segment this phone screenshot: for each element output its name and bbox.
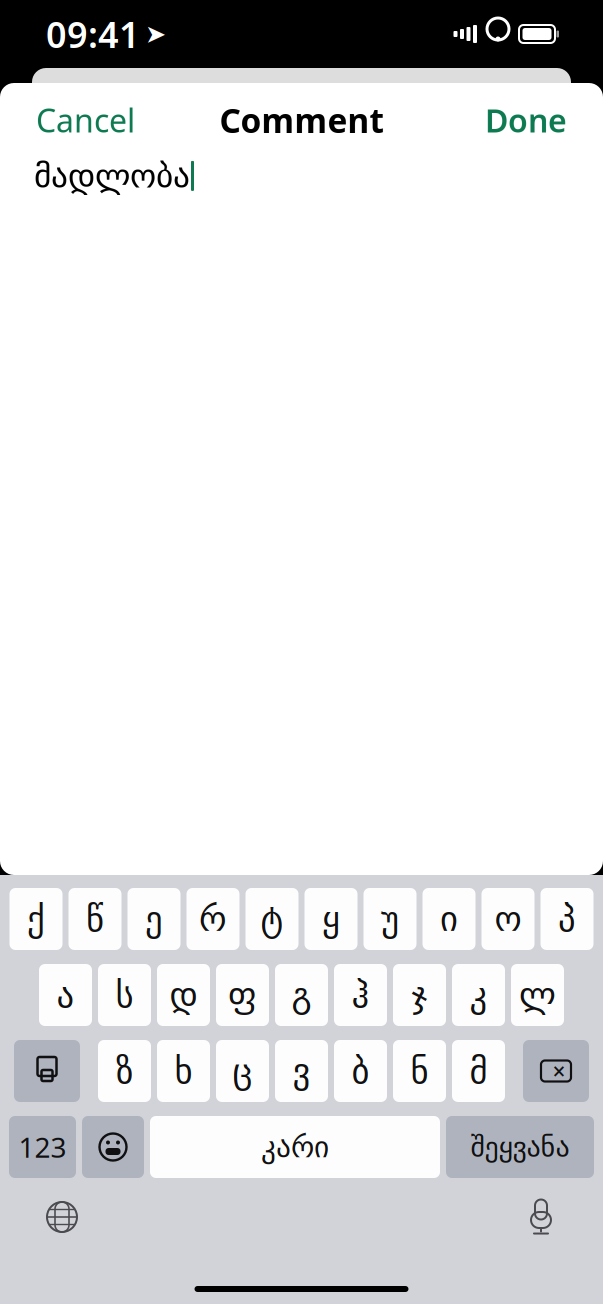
staticText: შეყვანა: [470, 1131, 569, 1163]
button[interactable]: მ: [452, 1040, 505, 1102]
staticText: უ: [381, 899, 399, 939]
button[interactable]: ზ: [98, 1040, 151, 1102]
staticText: გ: [291, 975, 311, 1015]
staticText: ა: [56, 975, 74, 1015]
staticText: ო: [494, 899, 521, 939]
staticText: ხ: [174, 1051, 192, 1091]
button[interactable]: პ: [540, 888, 593, 950]
button[interactable]: Delete: [523, 1040, 589, 1102]
button[interactable]: გ: [275, 964, 328, 1026]
staticText: ე: [145, 899, 163, 939]
button[interactable]: წ: [68, 888, 121, 950]
staticText: წ: [86, 899, 104, 939]
staticText: ბ: [351, 1051, 369, 1091]
button[interactable]: Shift: [14, 1040, 80, 1102]
button[interactable]: Cancel: [28, 93, 143, 147]
button[interactable]: კ: [452, 964, 505, 1026]
button[interactable]: დ: [157, 964, 210, 1026]
button[interactable]: Numbers: [9, 1116, 76, 1178]
staticText: ნ: [410, 1051, 428, 1091]
staticText: Cancel: [36, 99, 135, 141]
button[interactable]: ე: [127, 888, 180, 950]
staticText: ჰ: [351, 975, 369, 1015]
button[interactable]: ჰ: [334, 964, 387, 1026]
button[interactable]: ს: [98, 964, 151, 1026]
button[interactable]: Dictation: [511, 1194, 571, 1240]
staticText: ×: [552, 1056, 565, 1086]
staticText: 123: [18, 1128, 66, 1166]
staticText: ზ: [116, 1051, 133, 1091]
staticText: მადლობა: [34, 157, 190, 195]
staticText: ფ: [228, 975, 257, 1015]
staticText: დ: [169, 975, 197, 1015]
button[interactable]: ჯ: [393, 964, 446, 1026]
button[interactable]: ქ: [9, 888, 62, 950]
button[interactable]: ა: [39, 964, 92, 1026]
button[interactable]: Emoji: [82, 1116, 144, 1178]
button[interactable]: Next keyboard: [32, 1194, 92, 1240]
button[interactable]: ფ: [216, 964, 269, 1026]
button[interactable]: ნ: [393, 1040, 446, 1102]
button[interactable]: ო: [481, 888, 534, 950]
button[interactable]: Done: [477, 93, 575, 147]
button[interactable]: Return: [446, 1116, 594, 1178]
staticText: ლ: [519, 975, 556, 1015]
button[interactable]: რ: [186, 888, 239, 950]
button[interactable]: ი: [422, 888, 475, 950]
button[interactable]: ვ: [275, 1040, 328, 1102]
staticText: ➤: [145, 20, 166, 48]
button[interactable]: ლ: [511, 964, 564, 1026]
staticText: ჯ: [411, 975, 427, 1015]
staticText: ი: [440, 899, 458, 939]
button[interactable]: ტ: [245, 888, 298, 950]
button[interactable]: კარი: [150, 1116, 440, 1178]
staticText: კარი: [261, 1130, 329, 1164]
button[interactable]: ბ: [334, 1040, 387, 1102]
button[interactable]: ც: [216, 1040, 269, 1102]
staticText: Done: [485, 99, 567, 141]
staticText: ც: [232, 1051, 252, 1091]
button[interactable]: ყ: [304, 888, 357, 950]
button[interactable]: უ: [363, 888, 416, 950]
staticText: Comment: [219, 98, 383, 142]
staticText: ს: [115, 975, 133, 1015]
button[interactable]: ხ: [157, 1040, 210, 1102]
staticText: მ: [469, 1051, 487, 1091]
staticText: ვ: [292, 1051, 310, 1091]
staticText: ტ: [260, 899, 283, 939]
staticText: კ: [469, 975, 487, 1015]
staticText: ყ: [322, 899, 340, 939]
staticText: რ: [199, 899, 227, 939]
staticText: ქ: [27, 899, 45, 939]
staticText: 09:41: [46, 10, 140, 58]
staticText: პ: [558, 899, 576, 939]
